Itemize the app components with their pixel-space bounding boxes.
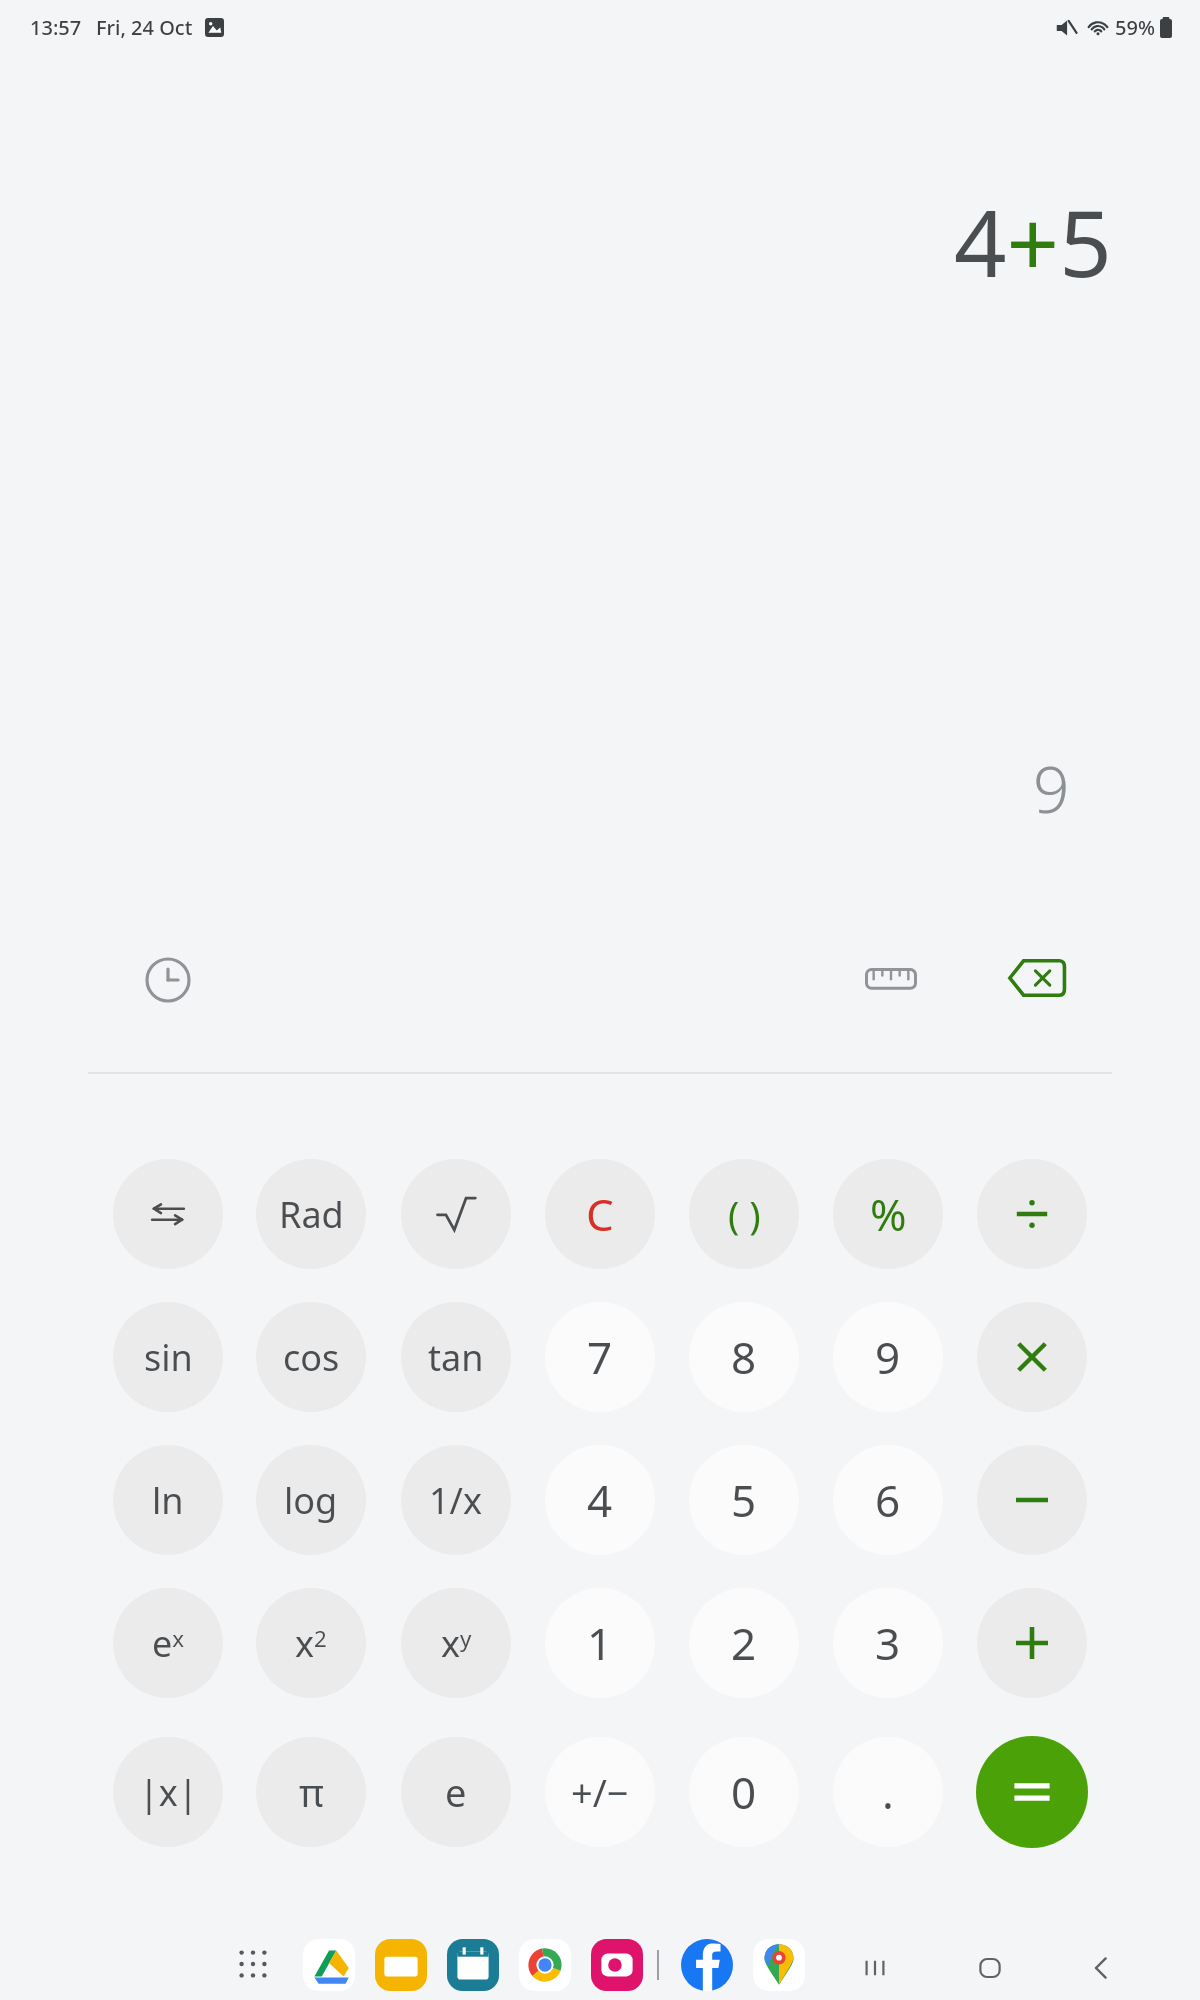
button[interactable]: 5 [689,1445,799,1555]
button[interactable]: |x| [113,1737,223,1847]
staticText: 1 [587,1613,613,1673]
staticText: Fri, 24 Oct [96,14,193,41]
staticText: 13:57 [30,14,82,41]
button[interactable]: Back [1070,1936,1134,2000]
staticText: 8 [731,1327,757,1387]
button[interactable]: sin [113,1302,223,1412]
staticText: e [445,1766,467,1818]
staticText: C [586,1184,614,1244]
button[interactable]: 1 [545,1588,655,1698]
button[interactable]: tan [401,1302,511,1412]
staticText: π [299,1766,324,1818]
staticText: 3 [875,1613,901,1673]
staticText: 2 [731,1613,757,1673]
button[interactable]: Home [958,1936,1022,2000]
button[interactable]: App [374,1938,428,1992]
staticText: 9 [875,1327,901,1387]
button[interactable]: ln [113,1445,223,1555]
staticText: 6 [875,1470,901,1530]
button[interactable]: 1/x [401,1445,511,1555]
button[interactable]: . [833,1737,943,1847]
button[interactable]: 4 [545,1445,655,1555]
button[interactable]: App [302,1938,356,1992]
staticText: tan [428,1333,484,1382]
button[interactable]: 7 [545,1302,655,1412]
button[interactable]: App [680,1938,734,1992]
staticText: xy [441,1619,472,1668]
button[interactable]: App [446,1938,500,1992]
staticText: 9 [1033,745,1070,832]
staticText: ln [152,1476,184,1525]
staticText: . [882,1762,894,1822]
button[interactable]: 2 [689,1588,799,1698]
staticText: % [870,1184,907,1244]
staticText: x2 [295,1619,327,1668]
staticText: cos [283,1333,340,1382]
button[interactable]: Subtract [977,1445,1087,1555]
staticText: 7 [587,1327,613,1387]
staticText: 4 [587,1470,613,1530]
button[interactable]: 6 [833,1445,943,1555]
button[interactable]: ex [113,1588,223,1698]
button[interactable]: ( ) [689,1159,799,1269]
button[interactable]: Switch layout [113,1159,223,1269]
button[interactable]: x2 [256,1588,366,1698]
staticText: |x| [139,1768,198,1817]
staticText: ( ) [728,1188,761,1240]
button[interactable]: App [752,1938,806,1992]
button[interactable]: App [590,1938,644,1992]
button[interactable]: Apps [227,1938,279,1990]
staticText: sin [144,1333,193,1382]
button[interactable]: Divide [977,1159,1087,1269]
staticText: 4+5 [954,179,1112,304]
staticText: log [284,1476,338,1525]
button[interactable]: Equals [976,1736,1088,1848]
button[interactable]: Backspace [999,940,1075,1016]
button[interactable]: Square root [401,1159,511,1269]
button[interactable]: 9 [833,1302,943,1412]
staticText: 0 [731,1762,757,1822]
staticText: 1/x [429,1476,483,1525]
button[interactable]: 0 [689,1737,799,1847]
button[interactable]: History [132,944,204,1016]
button[interactable]: Add [977,1588,1087,1698]
staticText: 59% [1115,14,1155,41]
staticText: ex [152,1619,185,1668]
button[interactable]: % [833,1159,943,1269]
button[interactable]: 3 [833,1588,943,1698]
button[interactable]: Multiply [977,1302,1087,1412]
button[interactable]: xy [401,1588,511,1698]
button[interactable]: Unit converter [855,942,927,1014]
button[interactable]: C [545,1159,655,1269]
button[interactable]: +/− [545,1737,655,1847]
staticText: Rad [279,1190,344,1239]
button[interactable]: Recent apps [843,1936,907,2000]
button[interactable]: 8 [689,1302,799,1412]
button[interactable]: cos [256,1302,366,1412]
button[interactable]: App [518,1938,572,1992]
button[interactable]: Rad [256,1159,366,1269]
button[interactable]: π [256,1737,366,1847]
button[interactable]: log [256,1445,366,1555]
staticText: +/− [571,1766,629,1818]
staticText: 5 [731,1470,757,1530]
button[interactable]: e [401,1737,511,1847]
